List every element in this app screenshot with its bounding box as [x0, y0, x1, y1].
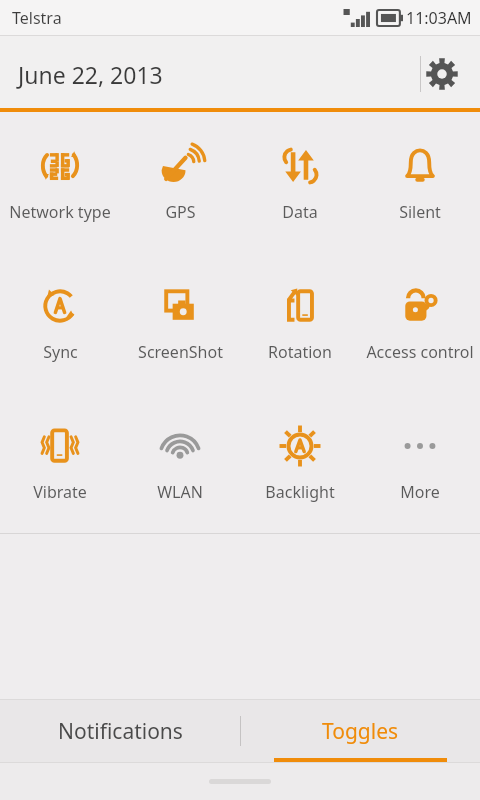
staticText: ScreenShot: [138, 341, 223, 363]
staticText: Data: [282, 201, 318, 223]
button[interactable]: Silent: [360, 113, 480, 253]
button[interactable]: Settings: [416, 48, 468, 100]
button[interactable]: Data: [240, 113, 360, 253]
staticText: GPS: [165, 201, 196, 223]
staticText: More: [400, 481, 440, 503]
button[interactable]: More: [360, 393, 480, 533]
staticText: Notifications: [58, 717, 183, 746]
button[interactable]: ScreenShot: [120, 253, 240, 393]
button[interactable]: Access control: [360, 253, 480, 393]
staticText: Vibrate: [33, 481, 87, 503]
button[interactable]: GPS: [120, 113, 240, 253]
staticText: Telstra: [12, 7, 62, 29]
staticText: Rotation: [268, 341, 332, 363]
staticText: WLAN: [157, 481, 203, 503]
staticText: Access control: [366, 341, 474, 363]
staticText: Network type: [9, 201, 111, 223]
staticText: Sync: [43, 341, 78, 363]
staticText: Toggles: [322, 717, 399, 746]
button[interactable]: Rotation: [240, 253, 360, 393]
button[interactable]: WLAN: [120, 393, 240, 533]
staticText: 11:03AM: [406, 7, 472, 29]
staticText: Backlight: [265, 481, 335, 503]
button[interactable]: Sync: [0, 253, 120, 393]
button[interactable]: Network type: [0, 113, 120, 253]
button[interactable]: Toggles: [240, 700, 480, 762]
button[interactable]: Vibrate: [0, 393, 120, 533]
button[interactable]: Notifications: [0, 700, 240, 762]
staticText: Silent: [399, 201, 441, 223]
staticText: June 22, 2013: [18, 59, 163, 90]
button[interactable]: Backlight: [240, 393, 360, 533]
